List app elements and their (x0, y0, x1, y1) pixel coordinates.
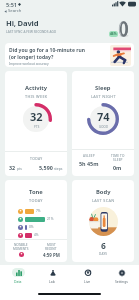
other: Lab (50, 270, 56, 276)
staticText: LAST SCAN (92, 198, 115, 203)
staticText: Live (84, 279, 91, 284)
staticText: Improve workout accuracy (9, 62, 49, 66)
staticText: Lab (49, 279, 55, 284)
staticText: 5h 45m (79, 160, 99, 167)
staticText: PTS (34, 125, 40, 129)
staticText: SLEEP (113, 158, 123, 162)
staticText: 0% (29, 225, 34, 229)
staticText: 5:51 (6, 1, 17, 8)
button[interactable]: Tone (5, 180, 67, 262)
staticText: Settings (115, 279, 128, 284)
staticText: 74 (97, 109, 110, 124)
staticText: THIS WEEK (25, 94, 48, 99)
staticText: DAYS (99, 252, 108, 256)
staticText: 0m (113, 164, 122, 171)
staticText: Did you go for a 10-minute run (or longe… (9, 47, 85, 60)
button[interactable]: Body (72, 180, 134, 262)
staticText: Hi, David (6, 18, 39, 28)
staticText: MOMENTS (13, 247, 29, 251)
staticText: RECENT (45, 247, 57, 251)
other: Settings (119, 270, 125, 276)
button[interactable]: Activity (5, 71, 67, 176)
staticText: TODAY (30, 156, 43, 161)
staticText: ASLEEP (83, 154, 95, 158)
staticText: 46% (110, 32, 117, 36)
staticText: 5,590 (39, 164, 53, 171)
staticText: NOTABLE (14, 243, 28, 247)
staticText: 21% (47, 217, 54, 221)
staticText: 4% (34, 233, 39, 237)
staticText: Activity (25, 84, 48, 92)
staticText: 4:59 PM (43, 252, 60, 258)
button[interactable]: Data (1, 266, 35, 286)
staticText: steps (53, 166, 63, 171)
staticText: Tone (29, 188, 43, 196)
button[interactable]: Live (70, 266, 104, 286)
staticText: TODAY (29, 198, 43, 203)
staticText: TIME TO (111, 154, 125, 158)
staticText: Search (8, 8, 22, 14)
staticText: LAST SYNC A FEW SECONDS AGO (6, 30, 57, 34)
button[interactable]: Settings (104, 266, 138, 286)
button[interactable]: Did you go for a 10-minute run (or longe… (5, 43, 134, 67)
staticText: 32 (30, 109, 43, 124)
staticText: GOOD (99, 125, 109, 129)
staticText: 7% (36, 209, 41, 213)
staticText: pts (16, 166, 22, 171)
other: Data (16, 270, 22, 276)
other: Live (85, 270, 91, 276)
staticText: MOST (47, 243, 56, 247)
staticText: Data (14, 279, 22, 284)
staticText: 6 (101, 240, 106, 252)
button[interactable]: Lab (35, 266, 69, 286)
staticText: Body (96, 188, 111, 196)
button[interactable]: Sleep (72, 71, 134, 176)
staticText: LAST NIGHT (91, 94, 116, 99)
staticText: Sleep (95, 84, 111, 92)
staticText: 32 (9, 164, 16, 171)
